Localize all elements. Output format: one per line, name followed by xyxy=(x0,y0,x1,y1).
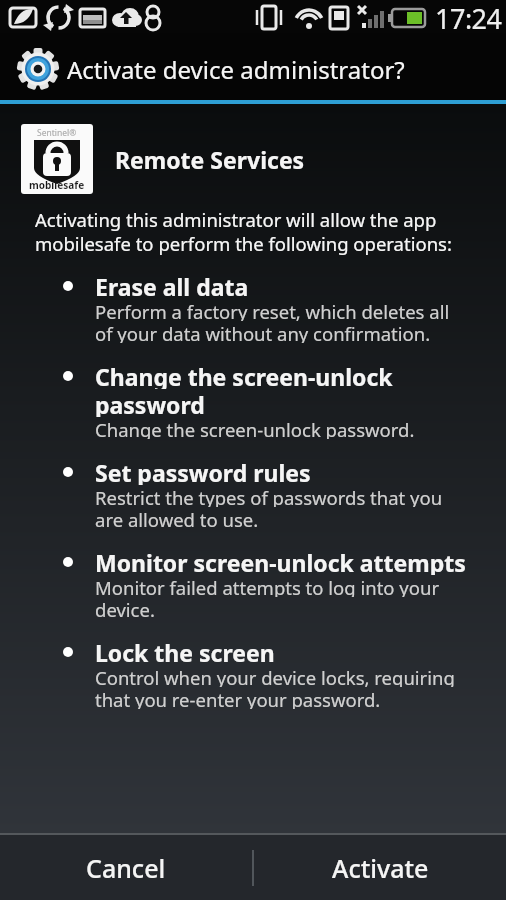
staticText: Change the screen-unlock password. xyxy=(95,417,415,439)
staticText: that you re-enter your password. xyxy=(95,687,381,709)
staticText: Monitor screen-unlock attempts xyxy=(95,547,466,575)
staticText: Lock the screen xyxy=(95,637,275,665)
staticText: Activate xyxy=(332,851,429,885)
staticText: Cancel xyxy=(86,851,166,885)
staticText: mobilesafe to perform the following oper… xyxy=(35,231,452,255)
staticText: Restrict the types of passwords that you xyxy=(95,485,443,507)
staticText: Control when your device locks, requirin… xyxy=(95,665,455,687)
staticText: are allowed to use. xyxy=(95,507,259,529)
staticText: Activate device administrator? xyxy=(67,53,405,86)
staticText: Set password rules xyxy=(95,457,311,485)
staticText: Sentinel® xyxy=(37,127,77,139)
staticText: Erase all data xyxy=(95,271,249,299)
staticText: password xyxy=(95,389,205,417)
button[interactable]: Cancel xyxy=(0,835,252,900)
staticText: device. xyxy=(95,597,155,619)
staticText: mobilesafe xyxy=(29,178,85,192)
staticText: Change the screen-unlock xyxy=(95,361,393,389)
staticText: 17:24 xyxy=(435,0,502,33)
staticText: Perform a factory reset, which deletes a… xyxy=(95,299,450,321)
staticText: Remote Services xyxy=(115,144,305,175)
staticText: of your data without any confirmation. xyxy=(95,321,431,343)
button[interactable]: Activate xyxy=(254,835,506,900)
staticText: Monitor failed attempts to log into your xyxy=(95,575,440,597)
staticText: Activating this administrator will allow… xyxy=(35,207,437,231)
